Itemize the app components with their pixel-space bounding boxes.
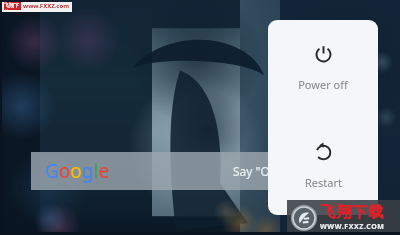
staticText: Power off xyxy=(298,77,348,92)
button[interactable]: Google xyxy=(31,152,291,190)
staticText: WWW.FXXZ.COM xyxy=(320,222,385,232)
staticText: Google xyxy=(45,158,110,184)
button[interactable]: Power off xyxy=(268,20,378,117)
staticText: Say "Ok xyxy=(233,163,277,179)
staticText: Restart xyxy=(305,175,342,190)
staticText: www.FXXZ.com xyxy=(23,2,70,10)
button[interactable]: Restart xyxy=(268,117,378,215)
staticText: 飞翔下载 xyxy=(4,2,21,10)
staticText: 飞翔下载 xyxy=(320,203,384,222)
